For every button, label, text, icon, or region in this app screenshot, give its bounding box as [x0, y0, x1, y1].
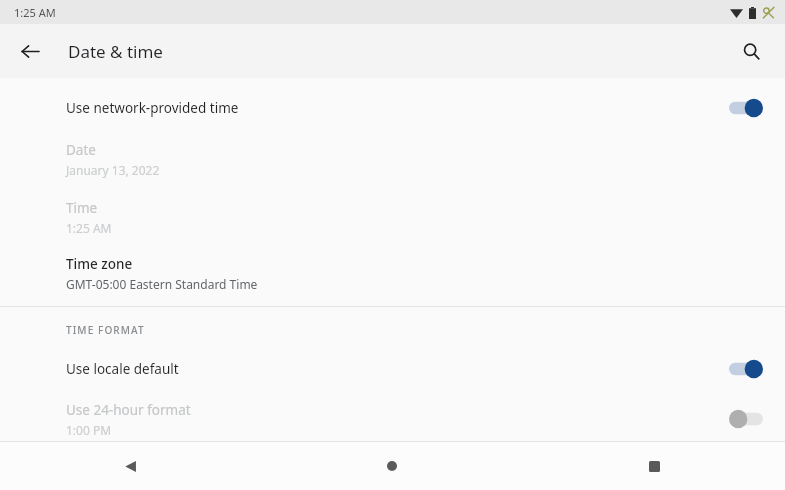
staticText: January 13, 2022	[66, 162, 160, 178]
staticText: 1:25 AM	[14, 5, 56, 20]
button[interactable]: Time zone	[0, 246, 785, 300]
staticText: TIME FORMAT	[66, 323, 145, 337]
staticText: Time	[66, 199, 98, 217]
button[interactable]: Recent apps	[523, 442, 785, 490]
button[interactable]: Search	[731, 31, 771, 71]
staticText: 1:00 PM	[66, 422, 112, 438]
staticText: Date & time	[68, 40, 163, 63]
button[interactable]: Date	[0, 130, 785, 188]
button[interactable]: Use locale default	[0, 349, 785, 389]
button[interactable]: On	[729, 98, 763, 118]
button[interactable]: Back	[10, 31, 50, 71]
staticText: Use network-provided time	[66, 99, 729, 117]
button[interactable]: Home	[261, 442, 523, 490]
button[interactable]: Use network-provided time	[0, 86, 785, 130]
button[interactable]: On	[729, 359, 763, 379]
button[interactable]: Use 24-hour format	[0, 397, 785, 441]
button[interactable]: Off	[729, 409, 763, 429]
button[interactable]: Back	[0, 442, 261, 490]
staticText: Use locale default	[66, 360, 729, 378]
staticText: Time zone	[66, 255, 133, 273]
staticText: Date	[66, 141, 96, 159]
staticText: Use 24-hour format	[66, 401, 191, 419]
staticText: 1:25 AM	[66, 220, 112, 236]
staticText: GMT-05:00 Eastern Standard Time	[66, 276, 258, 292]
button[interactable]: Time	[0, 188, 785, 246]
